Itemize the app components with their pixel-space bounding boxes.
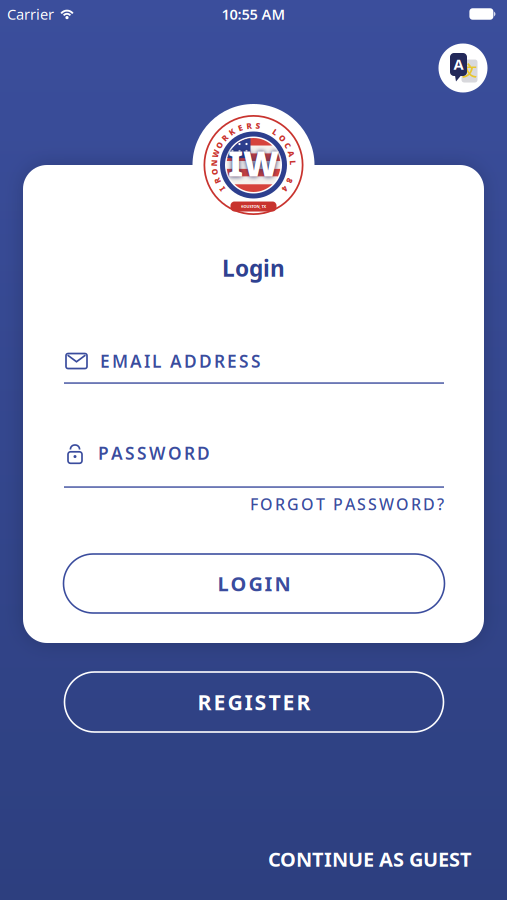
staticText: CONTINUE AS GUEST xyxy=(268,846,472,872)
staticText: R xyxy=(222,133,227,143)
staticText: C xyxy=(285,140,290,151)
staticText: O xyxy=(279,133,285,143)
staticText: 文 xyxy=(462,62,477,80)
button[interactable]: Change language xyxy=(438,43,487,92)
button[interactable]: R E G I S T E R xyxy=(64,672,443,732)
staticText: Login xyxy=(222,253,285,283)
staticText: S xyxy=(256,120,261,131)
staticText: F O R G O T P A S S W O R D ? xyxy=(250,493,444,515)
staticText: A xyxy=(453,54,463,74)
staticText: L O G I N xyxy=(217,570,290,597)
staticText: Carrier xyxy=(7,4,54,24)
staticText: K xyxy=(229,127,234,137)
staticText: O xyxy=(216,140,222,151)
button[interactable]: Password xyxy=(64,441,444,488)
staticText: E xyxy=(238,123,242,133)
staticText: R E G I S T E R xyxy=(197,688,310,716)
staticText: O xyxy=(212,167,218,177)
staticText: N xyxy=(211,157,218,168)
staticText: HOUSTON, TX xyxy=(240,204,266,209)
staticText: R xyxy=(215,175,220,186)
staticText: A xyxy=(288,148,294,159)
staticText: P A S S W O R D xyxy=(98,441,210,464)
staticText: 4 xyxy=(282,183,287,194)
button[interactable]: CONTINUE AS GUEST xyxy=(35,847,472,871)
button[interactable]: F O R G O T P A S S W O R D ? xyxy=(64,493,444,515)
staticText: IW xyxy=(228,140,279,186)
staticText: L xyxy=(273,127,278,137)
staticText: E M A I L A D D R E S S xyxy=(100,349,261,372)
staticText: R xyxy=(246,120,251,131)
button[interactable]: Email address xyxy=(64,349,444,384)
staticText: W xyxy=(212,148,220,159)
staticText: 10:55 AM xyxy=(221,4,285,24)
staticText: 8 xyxy=(287,175,292,186)
button[interactable]: L O G I N xyxy=(63,554,444,613)
staticText: I xyxy=(220,183,224,194)
staticText: L xyxy=(290,157,295,168)
